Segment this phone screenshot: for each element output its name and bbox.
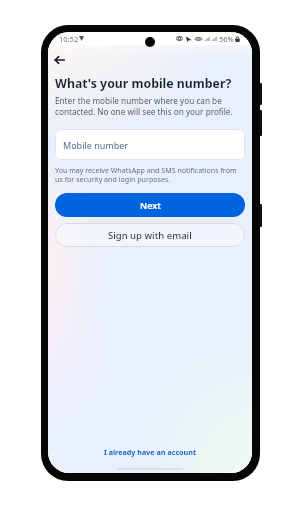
staticText: Next [140,199,161,211]
button[interactable]: Mobile number [55,129,245,160]
staticText: 10:52 [59,34,79,44]
button[interactable]: I already have an account [98,444,203,460]
staticText: Sign up with email [108,229,192,242]
button[interactable]: Back [50,53,66,67]
staticText: What's your mobile number? [55,75,232,92]
button[interactable]: Sign up with email [55,223,245,247]
staticText: I already have an account [104,447,197,457]
staticText: You may receive WhatsApp and SMS notific… [55,165,245,184]
staticText: Mobile number [63,139,129,151]
staticText: 56% [219,34,234,44]
staticText: Enter the mobile number where you can be… [55,95,245,117]
button[interactable]: Next [55,193,245,217]
